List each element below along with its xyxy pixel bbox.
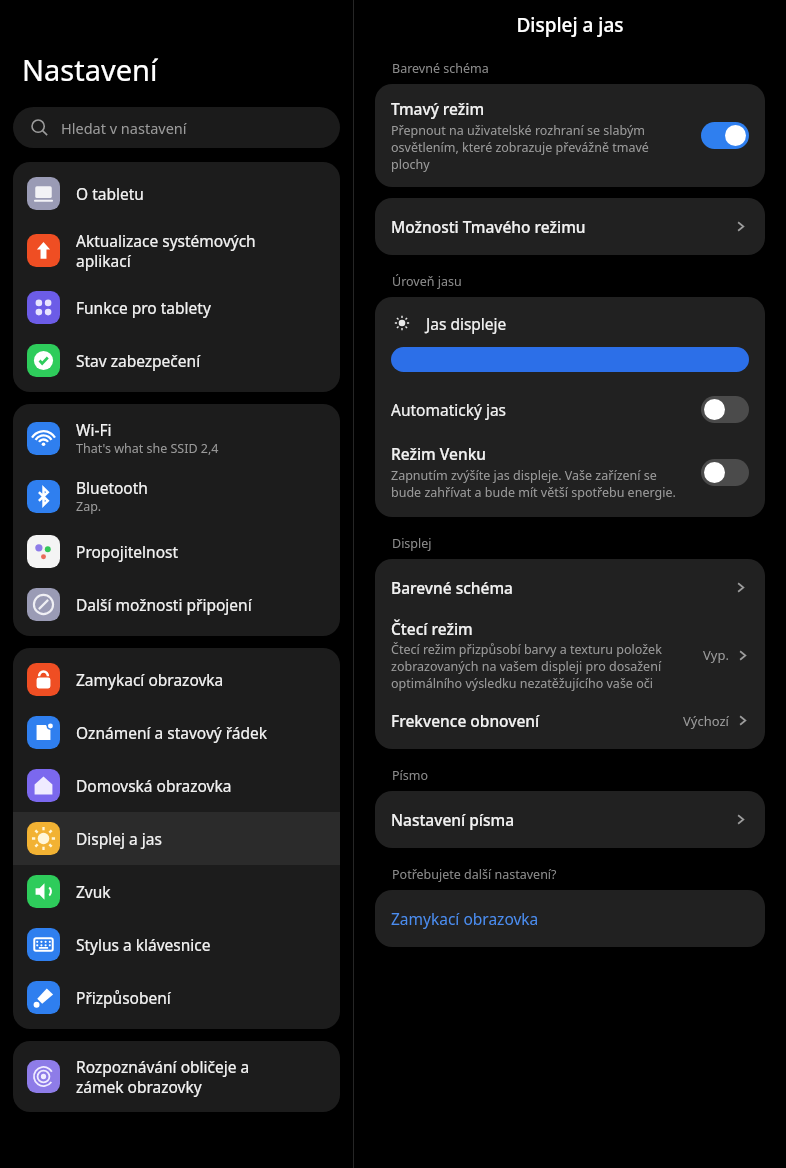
staticText: Další možnosti připojení [76,594,252,615]
staticText: Potřebujete další nastavení? [392,866,557,883]
button[interactable]: Domovská obrazovka [13,759,340,812]
staticText: Čtecí režim přizpůsobí barvy a texturu p… [391,641,695,692]
button[interactable]: Funkce pro tablety [13,281,340,334]
button[interactable]: Aktualizace systémových aplikací [13,220,340,281]
button[interactable]: Outdoor mode toggle [701,459,749,486]
staticText: Zapnutím zvýšíte jas displeje. Vaše zaří… [391,467,687,501]
staticText: Propojitelnost [76,541,179,562]
button[interactable]: O tabletu [13,167,340,220]
staticText: Stav zabezpečení [76,350,201,371]
button[interactable]: Frekvence obnovení [375,706,765,749]
button[interactable]: Rozpoznávání obličeje a zámek obrazovky [13,1046,340,1107]
staticText: Zamykací obrazovka [391,908,539,929]
staticText: Možnosti Tmavého režimu [391,216,732,237]
staticText: Nastavení písma [391,809,732,830]
button[interactable]: Zamykací obrazovka [13,653,340,706]
button[interactable]: Zamykací obrazovka [375,890,765,947]
staticText: Stylus a klávesnice [76,934,211,955]
staticText: Nastavení [22,50,158,89]
staticText: Zamykací obrazovka [76,669,224,690]
staticText: Přizpůsobení [76,987,171,1008]
staticText: Čtecí režim [391,618,473,639]
staticText: Barevné schéma [391,577,732,598]
staticText: Bluetooth [76,477,148,498]
staticText: Tmavý režim [391,98,485,119]
staticText: That's what she SSID 2,4 [76,440,219,457]
button[interactable]: Další možnosti připojení [13,578,340,631]
button[interactable]: Automatic brightness toggle [701,396,749,423]
staticText: Zvuk [76,881,111,902]
staticText: Úroveň jasu [392,273,462,290]
staticText: Displej [392,535,432,552]
button[interactable]: Barevné schéma [375,559,765,616]
staticText: Hledat v nastavení [61,118,187,138]
button[interactable]: Displej a jas [13,812,340,865]
button[interactable]: Oznámení a stavový řádek [13,706,340,759]
button[interactable]: Brightness slider [391,347,749,372]
staticText: Wi-Fi [76,419,112,440]
staticText: Oznámení a stavový řádek [76,722,268,743]
button[interactable]: Tmavý režim [375,84,765,187]
button[interactable]: Bluetooth [13,467,340,525]
staticText: Funkce pro tablety [76,297,211,318]
staticText: Režim Venku [391,443,487,464]
staticText: Zap. [76,498,102,515]
button[interactable]: Čtecí režim [375,616,765,706]
staticText: Displej a jas [354,12,786,38]
button[interactable]: Režim Venku [375,435,765,517]
staticText: Výchozí [683,712,729,730]
staticText: Automatický jas [391,399,701,420]
button[interactable]: Wi-Fi [13,409,340,467]
button[interactable]: Propojitelnost [13,525,340,578]
staticText: Displej a jas [76,828,162,849]
staticText: Písmo [392,767,429,784]
staticText: Jas displeje [426,313,507,334]
staticText: Domovská obrazovka [76,775,232,796]
button[interactable]: Nastavení písma [375,791,765,848]
button[interactable]: Zvuk [13,865,340,918]
staticText: Vyp. [703,646,729,664]
button[interactable]: Hledat v nastavení [13,107,340,148]
button[interactable]: Dark mode toggle [701,122,749,149]
staticText: Přepnout na uživatelské rozhraní se slab… [391,122,687,173]
button[interactable]: Přizpůsobení [13,971,340,1024]
staticText: Barevné schéma [392,60,489,77]
button[interactable]: Stylus a klávesnice [13,918,340,971]
staticText: O tabletu [76,183,144,204]
staticText: Aktualizace systémových aplikací [76,230,256,271]
button[interactable]: Stav zabezpečení [13,334,340,387]
staticText: Frekvence obnovení [391,710,683,731]
button[interactable]: Automatický jas [375,384,765,435]
staticText: Rozpoznávání obličeje a zámek obrazovky [76,1056,250,1097]
button[interactable]: Možnosti Tmavého režimu [375,198,765,255]
